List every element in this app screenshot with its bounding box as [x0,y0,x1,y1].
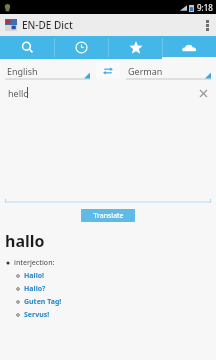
staticText: English [7,65,38,77]
staticText: hallo [5,230,45,252]
staticText: EN-DE Dict [22,18,73,32]
button[interactable]: hello [5,82,211,103]
button[interactable]: Favorites [109,36,162,59]
button[interactable]: Clear text [195,85,211,101]
staticText: German [128,65,163,77]
button[interactable]: History [55,36,108,59]
button[interactable]: Hallo? [15,284,46,294]
button[interactable]: Swap languages [96,62,120,79]
button[interactable]: Search [0,36,54,59]
button[interactable]: Guten Tag! [15,297,62,307]
staticText: Guten Tag! [24,297,62,307]
button[interactable]: Translate [81,209,135,222]
button[interactable]: English [5,61,90,80]
staticText: Translate [93,211,124,221]
button[interactable]: Online [163,36,216,59]
button[interactable]: German [126,61,211,80]
staticText: 9:18 [197,2,213,13]
staticText: Hallo? [24,284,46,294]
staticText: hello [8,87,29,99]
button[interactable]: Servus! [15,310,50,320]
staticText: Hallo! [24,271,45,281]
button[interactable]: More options [198,14,216,36]
button[interactable]: Hallo! [15,271,45,281]
staticText: Servus! [24,310,50,320]
staticText: interjection: [14,258,55,268]
